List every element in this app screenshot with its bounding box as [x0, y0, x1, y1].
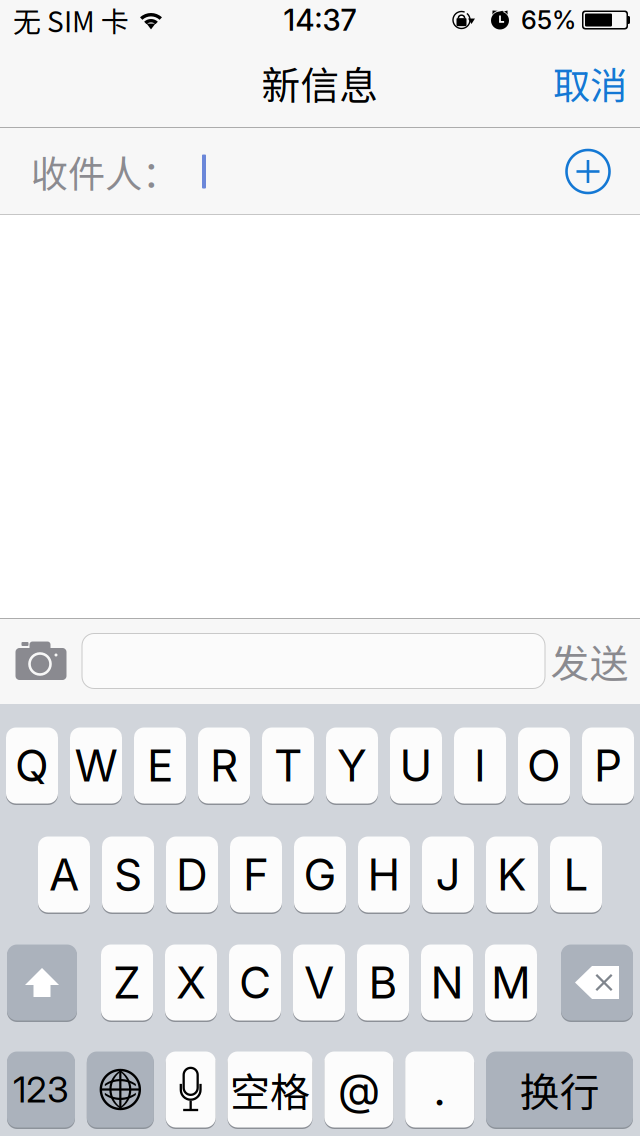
button[interactable]: K [486, 835, 538, 914]
staticText: 换行 [519, 1060, 599, 1118]
button[interactable]: @ [324, 1050, 393, 1129]
button[interactable]: A [38, 835, 90, 914]
staticText: M [491, 956, 531, 1009]
button[interactable]: Shift [7, 943, 77, 1022]
button[interactable]: E [134, 726, 186, 805]
staticText: T [274, 739, 302, 792]
staticText: E [147, 739, 173, 792]
staticText: J [435, 848, 460, 901]
staticText: P [594, 739, 622, 792]
staticText: G [303, 848, 336, 901]
staticText: B [368, 956, 397, 1009]
staticText: 发送 [550, 633, 628, 689]
staticText: 无 SIM 卡 [13, 0, 129, 40]
button[interactable]: Q [6, 726, 58, 805]
staticText: Y [337, 739, 367, 792]
button[interactable]: Camera [0, 634, 82, 688]
button[interactable]: G [294, 835, 346, 914]
button[interactable]: I [454, 726, 506, 805]
staticText: 取消 [553, 56, 627, 110]
staticText: 空格 [230, 1060, 310, 1118]
button[interactable]: Dictation [166, 1050, 216, 1129]
button[interactable]: B [357, 943, 409, 1022]
button[interactable]: Delete [561, 943, 633, 1022]
staticText: N [430, 956, 463, 1009]
staticText: . [433, 1063, 446, 1116]
button[interactable]: W [70, 726, 122, 805]
button[interactable]: 换行 [486, 1050, 633, 1129]
button[interactable]: N [421, 943, 473, 1022]
staticText: C [239, 956, 271, 1009]
button[interactable]: C [229, 943, 281, 1022]
button[interactable]: P [582, 726, 634, 805]
staticText: K [497, 848, 527, 901]
button[interactable]: R [198, 726, 250, 805]
button[interactable]: H [358, 835, 410, 914]
staticText: D [176, 848, 208, 901]
button[interactable]: M [485, 943, 537, 1022]
button[interactable]: T [262, 726, 314, 805]
button[interactable]: L [550, 835, 602, 914]
staticText: 新信息 [261, 55, 378, 111]
staticText: Q [15, 739, 49, 792]
button[interactable]: Y [326, 726, 378, 805]
button[interactable]: . [405, 1050, 474, 1129]
staticText: R [210, 739, 238, 792]
staticText: F [243, 848, 269, 901]
staticText: I [474, 739, 486, 792]
button[interactable]: U [390, 726, 442, 805]
staticText: W [74, 739, 117, 792]
staticText: 123 [13, 1068, 69, 1111]
button[interactable]: 发送 [545, 631, 640, 691]
staticText: S [114, 848, 142, 901]
button[interactable]: Add contact [550, 135, 626, 207]
staticText: 14:37 [283, 2, 356, 38]
button[interactable]: J [422, 835, 474, 914]
button[interactable]: X [165, 943, 217, 1022]
staticText: Z [113, 956, 141, 1009]
staticText: V [304, 956, 334, 1009]
button[interactable]: O [518, 726, 570, 805]
staticText: U [399, 739, 432, 792]
staticText: X [176, 956, 206, 1009]
button[interactable]: 123 [7, 1050, 75, 1129]
button[interactable]: D [166, 835, 218, 914]
button[interactable]: V [293, 943, 345, 1022]
button[interactable]: S [102, 835, 154, 914]
button[interactable]: 空格 [227, 1050, 312, 1129]
staticText: @ [338, 1063, 380, 1116]
staticText: O [527, 739, 561, 792]
staticText: A [49, 848, 79, 901]
staticText: 收件人： [31, 144, 179, 199]
button[interactable]: F [230, 835, 282, 914]
staticText: L [563, 848, 588, 901]
button[interactable]: 取消 [540, 42, 640, 126]
button[interactable]: Switch keyboard [87, 1050, 154, 1129]
staticText: 65% [521, 5, 576, 35]
staticText: H [367, 848, 400, 901]
button[interactable]: Z [101, 943, 153, 1022]
